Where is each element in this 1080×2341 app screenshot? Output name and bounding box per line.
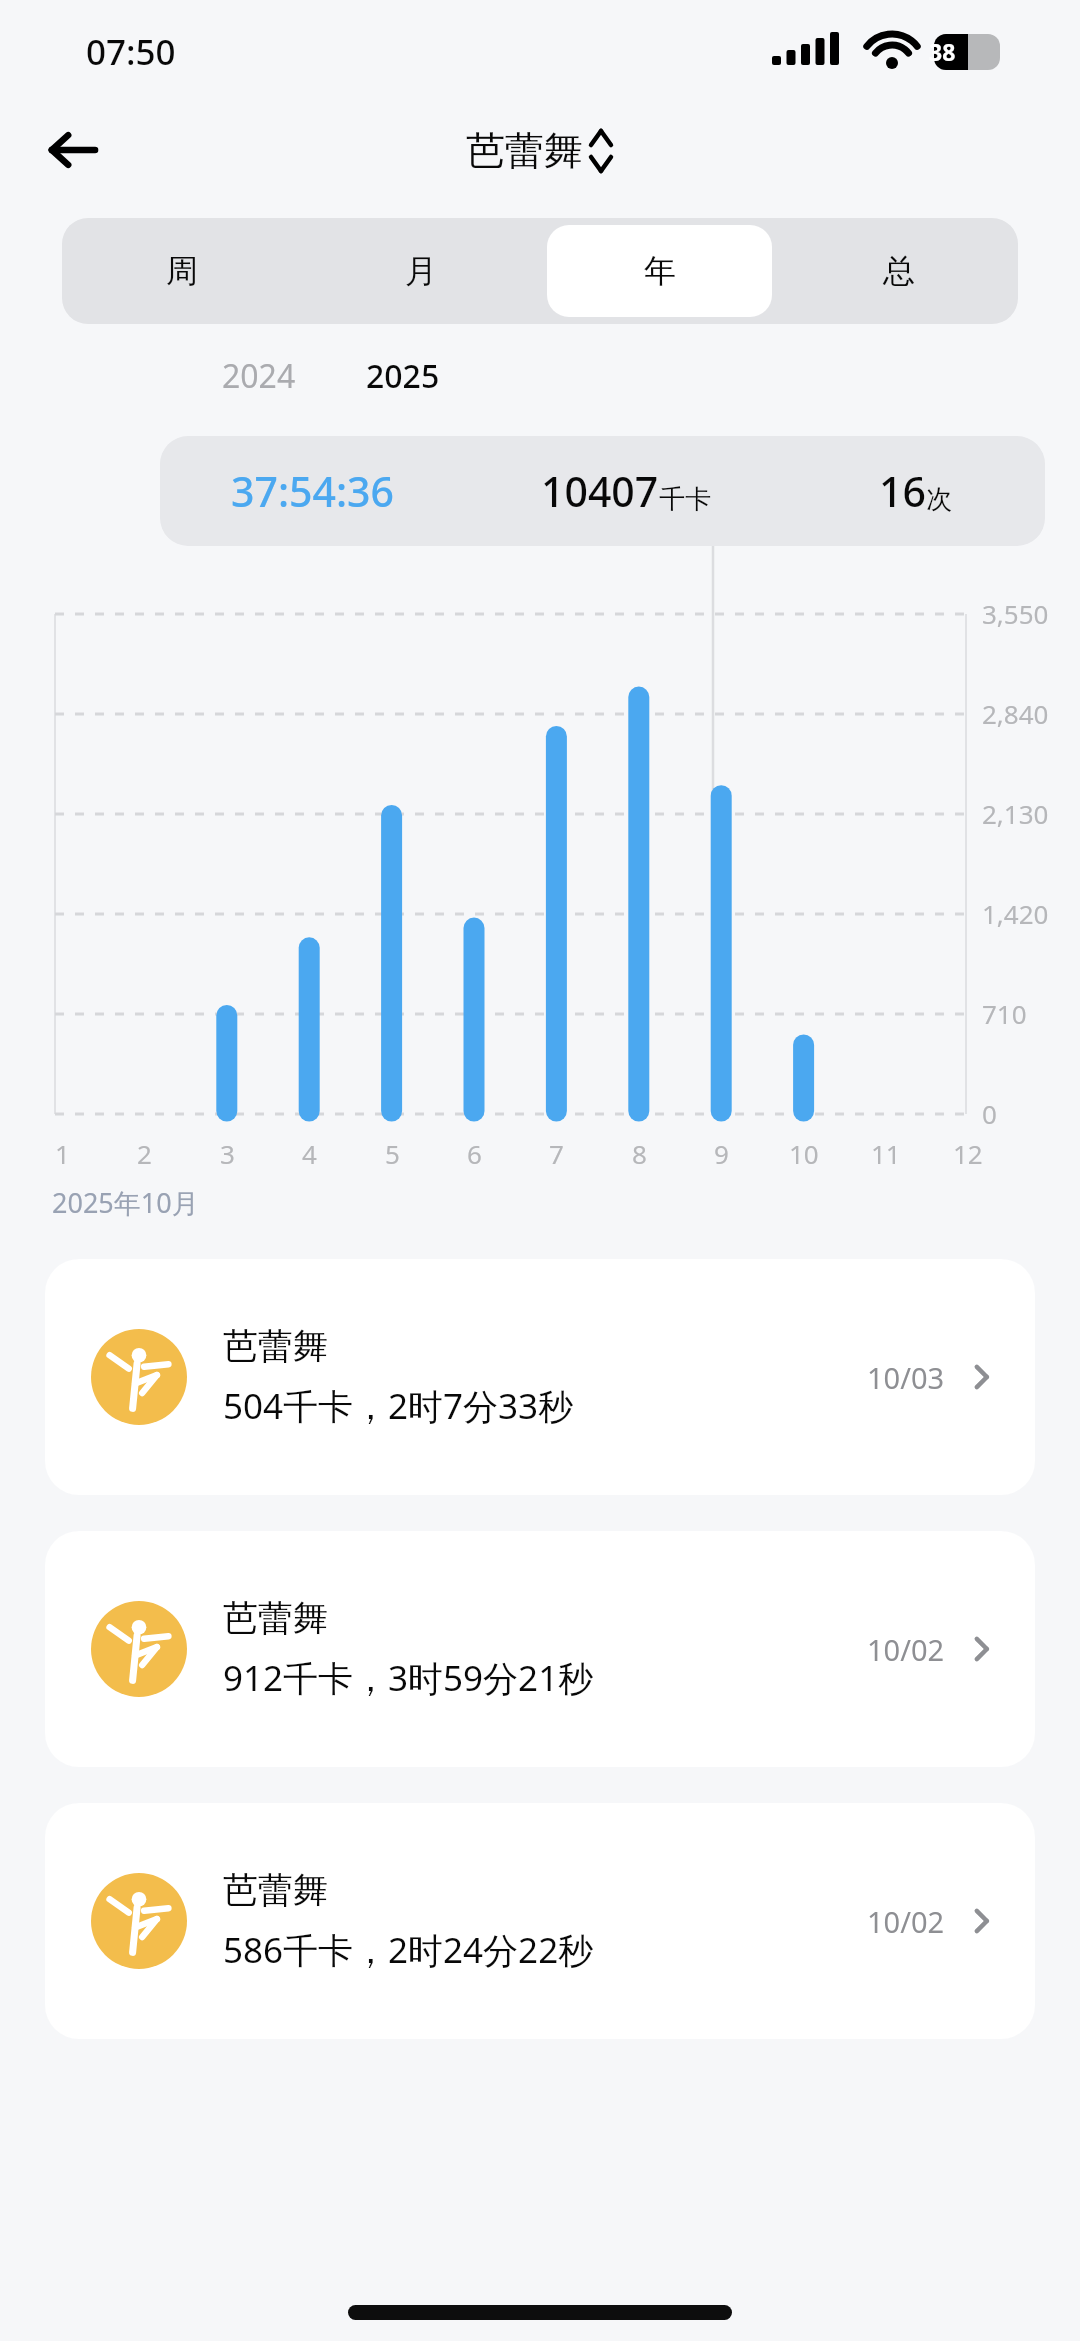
staticText: 周 <box>166 251 198 291</box>
staticText: 10407 <box>541 463 659 519</box>
button[interactable]: 芭蕾舞 <box>45 1803 1035 2039</box>
staticText: 504千卡，2时7分33秒 <box>223 1382 574 1430</box>
button[interactable]: 芭蕾舞 <box>45 1259 1035 1495</box>
staticText: 10 <box>789 1136 819 1171</box>
staticText: 2 <box>137 1136 152 1171</box>
button[interactable]: 芭蕾舞 <box>466 126 614 175</box>
staticText: 16 <box>879 463 926 519</box>
staticText: 1 <box>55 1136 70 1171</box>
staticText: 37:54:36 <box>231 463 395 519</box>
staticText: 912千卡，3时59分21秒 <box>223 1654 594 1702</box>
staticText: 2,130 <box>982 796 1049 831</box>
staticText: 芭蕾舞 <box>223 1596 328 1640</box>
staticText: 8 <box>632 1136 647 1171</box>
staticText: 次 <box>926 483 952 516</box>
button[interactable]: 2024 <box>212 348 306 404</box>
staticText: 千卡 <box>659 483 711 516</box>
button[interactable]: 月 <box>308 225 533 317</box>
button[interactable]: 2025 <box>356 348 450 404</box>
staticText: 10/02 <box>867 1630 945 1669</box>
staticText: 3 <box>220 1136 235 1171</box>
staticText: 年 <box>644 251 676 291</box>
staticText: 38 <box>929 36 956 67</box>
staticText: 10/03 <box>867 1358 945 1397</box>
staticText: 芭蕾舞 <box>466 126 583 175</box>
staticText: 710 <box>982 996 1027 1031</box>
staticText: 2025 <box>366 354 440 398</box>
staticText: 芭蕾舞 <box>223 1324 328 1368</box>
button[interactable]: 年 <box>547 225 772 317</box>
staticText: 月 <box>405 251 437 291</box>
staticText: 0 <box>982 1096 997 1131</box>
button[interactable]: 周 <box>69 225 294 317</box>
staticText: 6 <box>467 1136 482 1171</box>
staticText: 5 <box>385 1136 400 1171</box>
staticText: 07:50 <box>86 28 176 76</box>
staticText: 总 <box>883 251 915 291</box>
button[interactable]: 芭蕾舞 <box>45 1531 1035 1767</box>
staticText: 586千卡，2时24分22秒 <box>223 1926 594 1974</box>
staticText: 2,840 <box>982 696 1049 731</box>
staticText: 3,550 <box>982 596 1049 631</box>
staticText: 10/02 <box>867 1902 945 1941</box>
staticText: 4 <box>302 1136 317 1171</box>
staticText: 芭蕾舞 <box>223 1868 328 1912</box>
staticText: 1,420 <box>982 896 1049 931</box>
staticText: 2024 <box>222 354 296 398</box>
button[interactable]: Back <box>40 117 106 183</box>
staticText: 2025年10月 <box>52 1184 199 1221</box>
staticText: 7 <box>549 1136 564 1171</box>
staticText: 12 <box>953 1136 983 1171</box>
staticText: 9 <box>714 1136 729 1171</box>
staticText: 11 <box>871 1136 901 1171</box>
button[interactable]: 总 <box>786 225 1011 317</box>
